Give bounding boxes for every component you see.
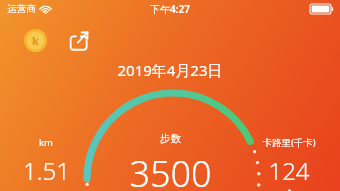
staticText: 运营商 [7, 3, 36, 15]
staticText: 步数 [160, 132, 181, 145]
button[interactable]: Coins [20, 25, 50, 55]
staticText: 124 [268, 154, 310, 187]
button[interactable]: km [18, 136, 74, 187]
staticText: 3500 [129, 149, 212, 191]
button[interactable]: 卡路里(千卡) [246, 136, 332, 191]
staticText: km [39, 136, 53, 149]
staticText: 下午4:27 [150, 2, 190, 16]
staticText: 2019年4月23日 [117, 60, 223, 80]
button[interactable]: Share [64, 25, 94, 55]
staticText: k [32, 33, 39, 48]
staticText: 1.51 [23, 154, 70, 187]
staticText: 卡路里(千卡) [262, 136, 316, 149]
